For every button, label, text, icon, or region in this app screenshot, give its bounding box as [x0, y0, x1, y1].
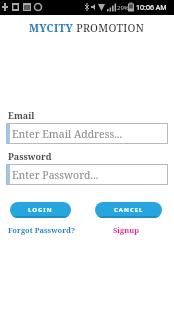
button[interactable]: LOGIN [10, 202, 71, 218]
staticText: LOGIN [28, 206, 53, 214]
button[interactable]: Forgot Password? [8, 225, 76, 235]
staticText: CANCEL [114, 206, 144, 214]
button[interactable]: Signup [113, 225, 140, 235]
button[interactable]: Enter Email Address... [6, 123, 168, 144]
staticText: Enter Email Address... [12, 127, 123, 141]
staticText: Email [8, 109, 35, 121]
staticText: MYCITY PROMOTION [29, 21, 145, 35]
staticText: Enter Password... [12, 168, 99, 182]
staticText: Password [8, 150, 52, 162]
button[interactable]: CANCEL [95, 202, 162, 218]
staticText: 29% [117, 4, 129, 12]
staticText: 10:06 AM [136, 3, 167, 13]
button[interactable]: Enter Password... [6, 164, 168, 185]
